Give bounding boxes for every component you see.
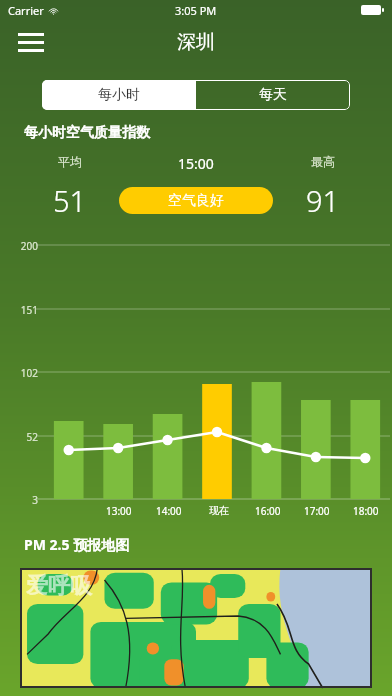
staticText: 3:05 PM: [175, 3, 217, 18]
staticText: 102: [8, 366, 38, 380]
staticText: 200: [8, 239, 38, 253]
staticText: 最高: [311, 154, 335, 169]
staticText: 15:00: [178, 154, 214, 173]
staticText: 每小时: [98, 86, 140, 104]
staticText: 13:00: [106, 504, 132, 518]
staticText: 爱呼吸: [26, 572, 92, 600]
staticText: 51: [53, 181, 87, 220]
staticText: Carrier: [8, 3, 44, 18]
button[interactable]: 每天: [196, 80, 350, 110]
staticText: 空气良好: [168, 192, 224, 210]
staticText: 每天: [259, 86, 287, 104]
staticText: 18:00: [353, 504, 379, 518]
staticText: 每小时空气质量指数: [24, 124, 150, 142]
staticText: 平均: [58, 154, 82, 169]
button[interactable]: 空气良好: [119, 187, 273, 214]
staticText: 现在: [209, 504, 229, 517]
staticText: 52: [8, 430, 38, 444]
staticText: 17:00: [304, 504, 330, 518]
button[interactable]: 爱呼吸: [20, 568, 372, 688]
staticText: 16:00: [255, 504, 281, 518]
staticText: 151: [8, 303, 38, 317]
staticText: 14:00: [156, 504, 182, 518]
button[interactable]: 每小时: [42, 80, 196, 110]
button[interactable]: Menu: [14, 25, 48, 59]
staticText: 3: [8, 493, 38, 507]
staticText: 深圳: [177, 30, 215, 54]
staticText: PM 2.5 预报地图: [24, 535, 130, 554]
staticText: 91: [306, 181, 340, 220]
